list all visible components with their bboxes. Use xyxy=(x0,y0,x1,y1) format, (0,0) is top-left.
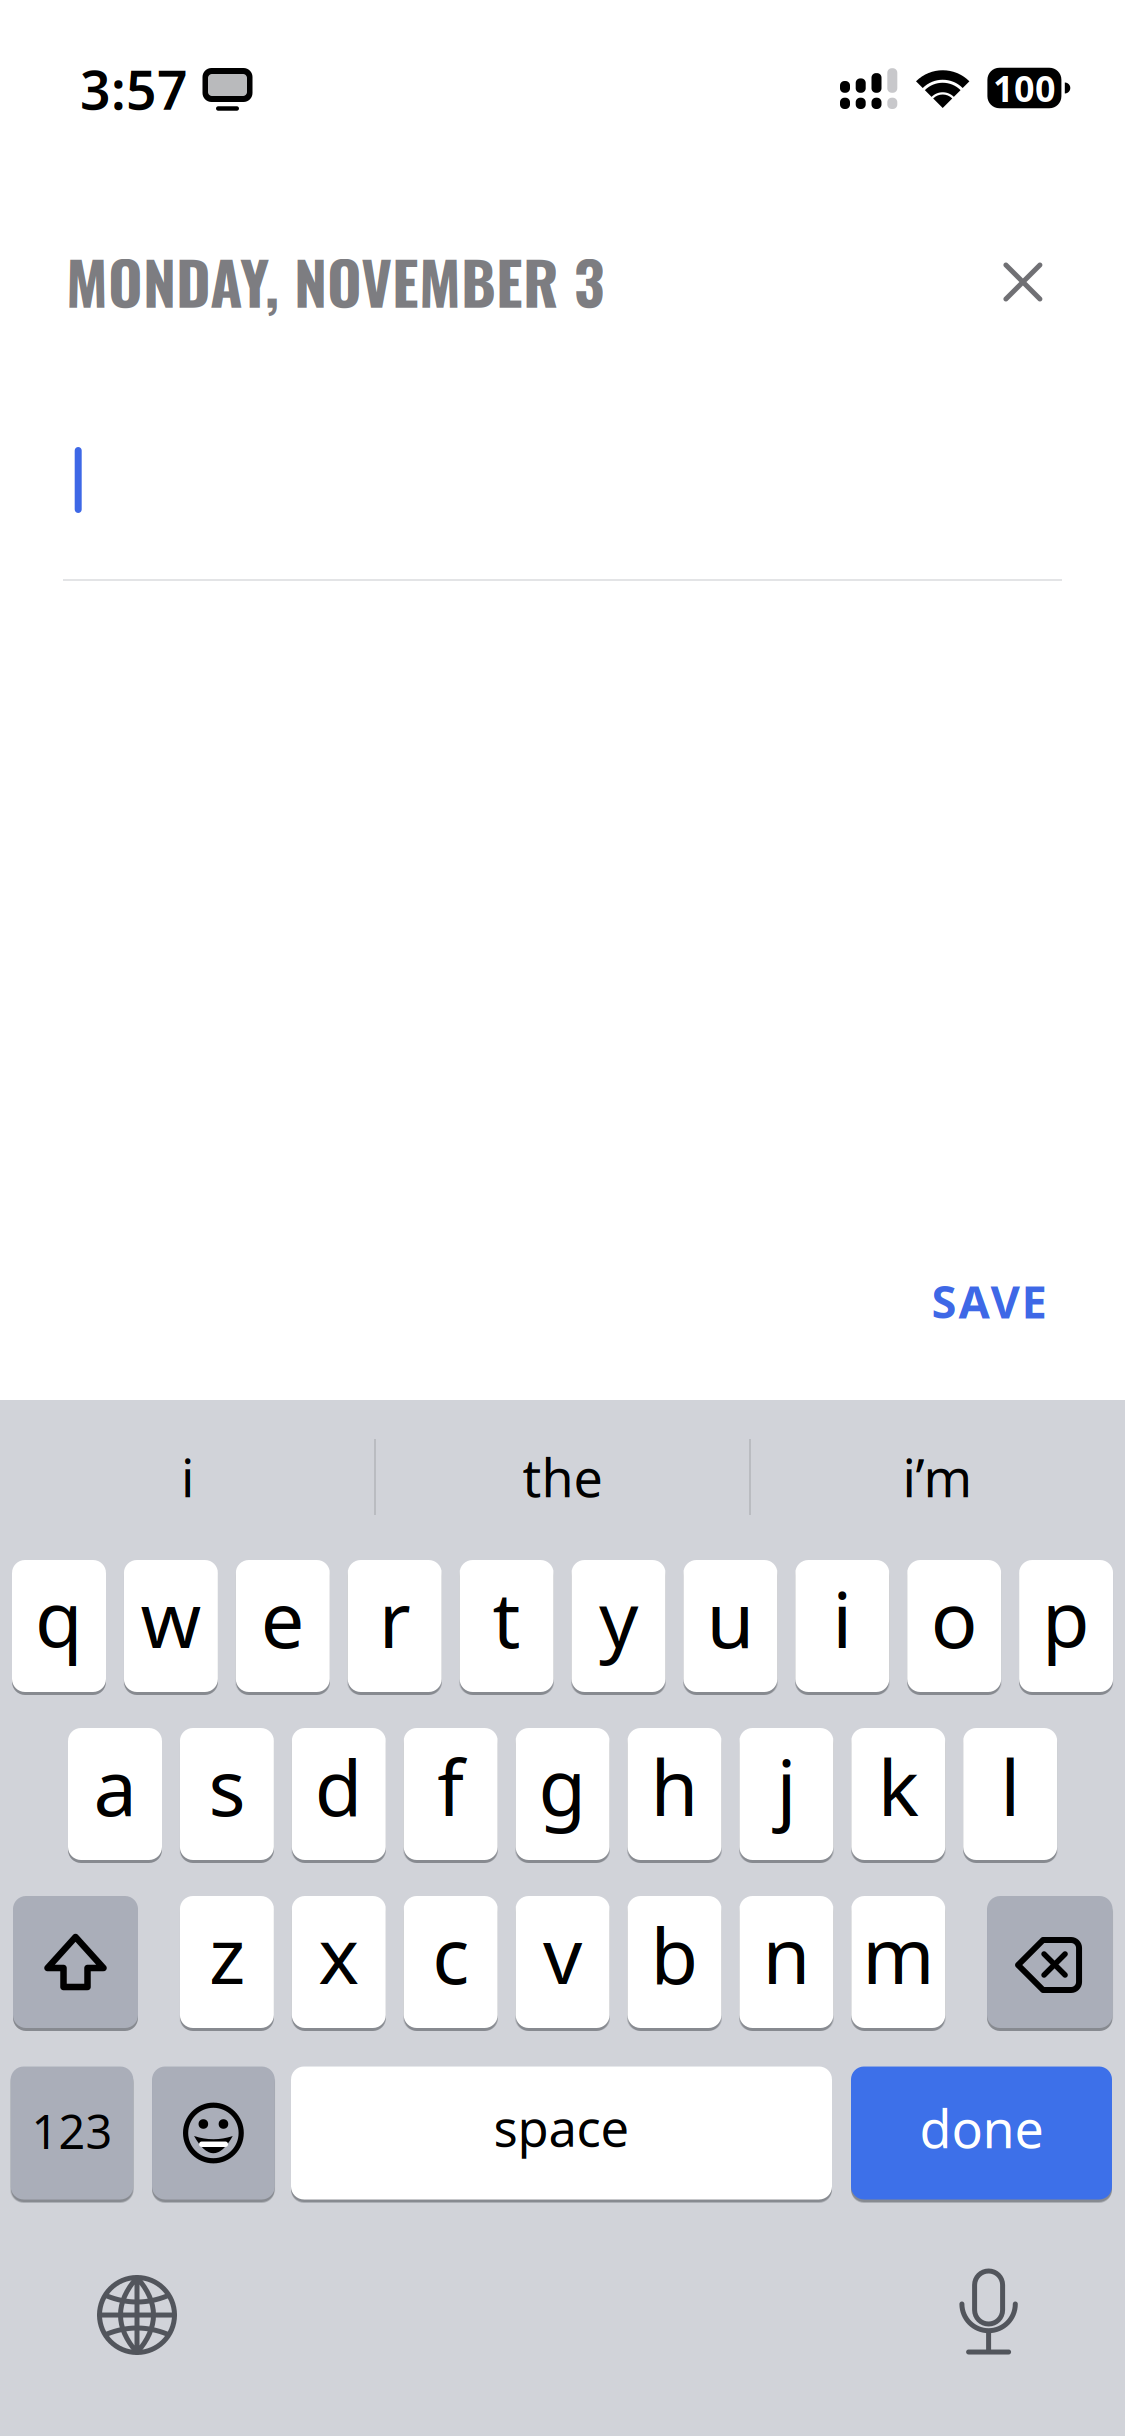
staticText: g xyxy=(539,1735,587,1837)
button[interactable]: j xyxy=(739,1728,833,1860)
button[interactable]: m xyxy=(851,1896,945,2028)
staticText: n xyxy=(762,1903,810,2005)
staticText: done xyxy=(919,2093,1043,2163)
staticText: m xyxy=(862,1903,934,2005)
button[interactable]: r xyxy=(348,1560,442,1692)
button[interactable]: s xyxy=(180,1728,274,1860)
staticText: o xyxy=(931,1567,978,1669)
button[interactable]: b xyxy=(627,1896,721,2028)
staticText: space xyxy=(493,2093,629,2161)
button[interactable]: x xyxy=(292,1896,386,2028)
staticText: v xyxy=(543,1903,582,2005)
button[interactable]: c xyxy=(404,1896,498,2028)
staticText: i xyxy=(181,1442,194,1512)
staticText: SAVE xyxy=(931,1271,1046,1331)
staticText: f xyxy=(437,1735,464,1837)
button[interactable]: o xyxy=(907,1560,1001,1692)
button[interactable]: g xyxy=(516,1728,610,1860)
staticText: k xyxy=(878,1735,919,1837)
button[interactable]: e xyxy=(236,1560,330,1692)
staticText: h xyxy=(650,1735,698,1837)
staticText: q xyxy=(35,1567,83,1669)
staticText: 100 xyxy=(993,64,1056,112)
button[interactable]: n xyxy=(739,1896,833,2028)
button[interactable]: h xyxy=(627,1728,721,1860)
staticText: e xyxy=(261,1567,305,1669)
button[interactable]: f xyxy=(404,1728,498,1860)
button[interactable]: l xyxy=(963,1728,1057,1860)
staticText: u xyxy=(706,1567,754,1669)
button[interactable]: z xyxy=(180,1896,274,2028)
staticText: w xyxy=(140,1567,201,1669)
staticText: s xyxy=(208,1735,245,1837)
button[interactable]: k xyxy=(851,1728,945,1860)
button[interactable]: w xyxy=(124,1560,218,1692)
staticText: MONDAY, NOVEMBER 3 xyxy=(66,237,604,325)
staticText: 123 xyxy=(31,2100,112,2162)
staticText: i’m xyxy=(902,1442,972,1512)
staticText: y xyxy=(599,1567,638,1669)
button[interactable]: Emoji xyxy=(152,2066,275,2199)
button[interactable]: Delete xyxy=(987,1896,1112,2028)
button[interactable]: v xyxy=(516,1896,610,2028)
button[interactable]: Close xyxy=(983,242,1063,322)
staticText: j xyxy=(776,1735,796,1837)
button[interactable]: y xyxy=(571,1560,665,1692)
staticText: t xyxy=(493,1567,521,1669)
staticText: the xyxy=(522,1442,602,1512)
button[interactable]: i’m xyxy=(752,1402,1122,1552)
staticText: p xyxy=(1042,1567,1090,1669)
staticText: b xyxy=(650,1903,698,2005)
staticText: x xyxy=(318,1903,359,2005)
button[interactable]: 123 xyxy=(11,2066,133,2199)
staticText: c xyxy=(432,1903,469,2005)
staticText: d xyxy=(315,1735,363,1837)
button[interactable]: q xyxy=(12,1560,106,1692)
button[interactable]: t xyxy=(460,1560,554,1692)
button[interactable]: Shift xyxy=(13,1896,138,2028)
staticText: a xyxy=(93,1735,136,1837)
button[interactable]: done xyxy=(851,2066,1112,2199)
staticText: i xyxy=(832,1567,852,1669)
button[interactable]: the xyxy=(377,1402,747,1552)
button[interactable]: i xyxy=(795,1560,889,1692)
staticText: 3:57 xyxy=(80,54,188,124)
button[interactable]: a xyxy=(68,1728,162,1860)
button[interactable]: Dictate xyxy=(934,2246,1044,2376)
button[interactable]: u xyxy=(683,1560,777,1692)
button[interactable]: i xyxy=(2,1402,372,1552)
staticText: l xyxy=(1000,1735,1020,1837)
staticText: r xyxy=(379,1567,411,1669)
button[interactable]: d xyxy=(292,1728,386,1860)
button[interactable]: space xyxy=(291,2066,832,2199)
staticText: z xyxy=(209,1903,245,2005)
button[interactable]: Next keyboard xyxy=(82,2260,192,2370)
button[interactable]: p xyxy=(1019,1560,1113,1692)
button[interactable]: SAVE xyxy=(931,1271,1046,1331)
